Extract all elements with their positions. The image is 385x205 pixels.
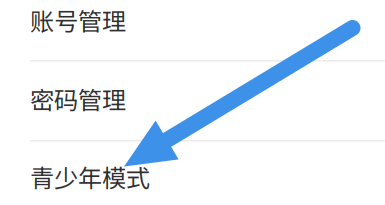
button[interactable]: 青少年模式 xyxy=(0,142,385,205)
staticText: 账号管理 xyxy=(30,2,126,37)
staticText: 密码管理 xyxy=(30,81,126,116)
button[interactable]: 账号管理 xyxy=(0,0,385,60)
button[interactable]: 密码管理 xyxy=(0,62,385,140)
staticText: 青少年模式 xyxy=(30,159,150,194)
